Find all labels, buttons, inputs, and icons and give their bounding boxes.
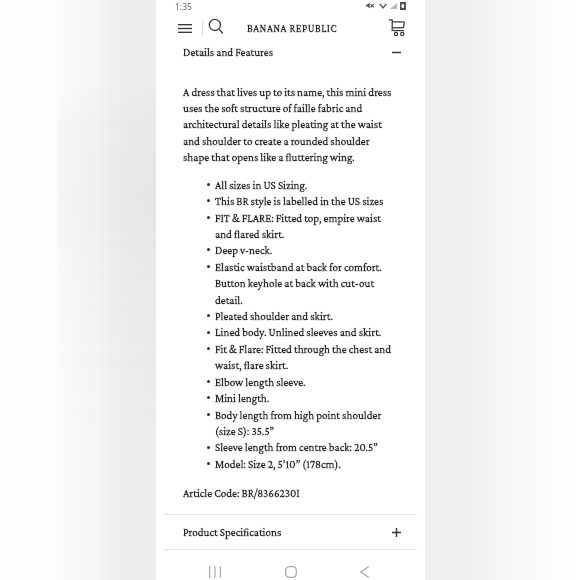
staticText: and flared skirt. (215, 228, 285, 240)
staticText: Lined body. Unlined sleeves and skirt. (215, 326, 382, 338)
button[interactable]: Home (275, 557, 307, 580)
staticText: Product Specifications (183, 526, 282, 538)
staticText: architectural details like pleating at t… (183, 118, 382, 130)
staticText: waist, flare skirt. (215, 359, 289, 371)
button[interactable]: Open navigation menu (172, 15, 198, 41)
staticText: Article Code: BR/8366230I (183, 487, 300, 499)
staticText: 1:35 (175, 1, 192, 13)
staticText: Deep v-neck. (215, 244, 273, 256)
staticText: shape that opens like a fluttering wing. (183, 151, 355, 163)
staticText: Fit & Flare: Fitted through the chest an… (215, 343, 392, 355)
staticText: Model: Size 2, 5’10” (178cm). (215, 458, 341, 470)
button[interactable]: Details and Features (156, 42, 425, 62)
staticText: uses the soft structure of faille fabric… (183, 102, 363, 114)
button[interactable]: Back (348, 557, 380, 580)
button[interactable]: Shopping bag (384, 14, 410, 40)
staticText: All sizes in US Sizing. (215, 179, 308, 191)
staticText: and shoulder to create a rounded shoulde… (183, 135, 370, 147)
staticText: detail. (215, 294, 243, 306)
staticText: FIT & FLARE: Fitted top, empire waist (215, 212, 381, 224)
staticText: Pleated shoulder and skirt. (215, 310, 333, 322)
staticText: Sleeve length from centre back: 20.5” (215, 441, 378, 453)
staticText: Body length from high point shoulder (215, 409, 382, 421)
staticText: A dress that lives up to its name, this … (183, 86, 392, 98)
staticText: Elastic waistband at back for comfort. (215, 261, 382, 273)
staticText: Elbow length sleeve. (215, 376, 306, 388)
staticText: Mini length. (215, 392, 270, 404)
staticText: Details and Features (183, 46, 274, 58)
staticText: BANANA REPUBLIC (247, 23, 338, 35)
staticText: Button keyhole at back with cut-out (215, 277, 375, 289)
button[interactable]: Search (203, 13, 229, 39)
button[interactable]: Product Specifications (156, 515, 425, 549)
staticText: This BR style is labelled in the US size… (215, 195, 384, 207)
staticText: (size S): 35.5” (215, 425, 275, 437)
button[interactable]: Recent apps (199, 557, 231, 580)
